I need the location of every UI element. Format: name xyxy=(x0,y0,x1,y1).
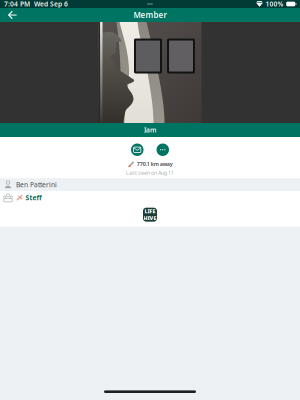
staticText: Iam xyxy=(144,126,156,134)
staticText: 100% xyxy=(265,0,283,8)
staticText: Wed Sep 6 xyxy=(34,0,68,8)
button[interactable]: Ben Patterini xyxy=(0,178,300,191)
staticText: Member xyxy=(133,10,166,20)
staticText: 7:04 PM xyxy=(4,0,30,8)
staticText: 770.1 km away xyxy=(137,160,173,168)
button[interactable]: Message xyxy=(131,143,143,156)
staticText: Ben Patterini xyxy=(16,180,57,189)
button[interactable]: Steff xyxy=(0,191,300,204)
staticText: HIVE xyxy=(143,215,156,222)
staticText: Last seen on Aug 11 xyxy=(126,169,174,176)
button[interactable]: More options xyxy=(156,143,169,156)
button[interactable]: Back xyxy=(3,8,21,22)
staticText: Steff xyxy=(25,193,41,202)
staticText: LIFE xyxy=(144,208,155,215)
